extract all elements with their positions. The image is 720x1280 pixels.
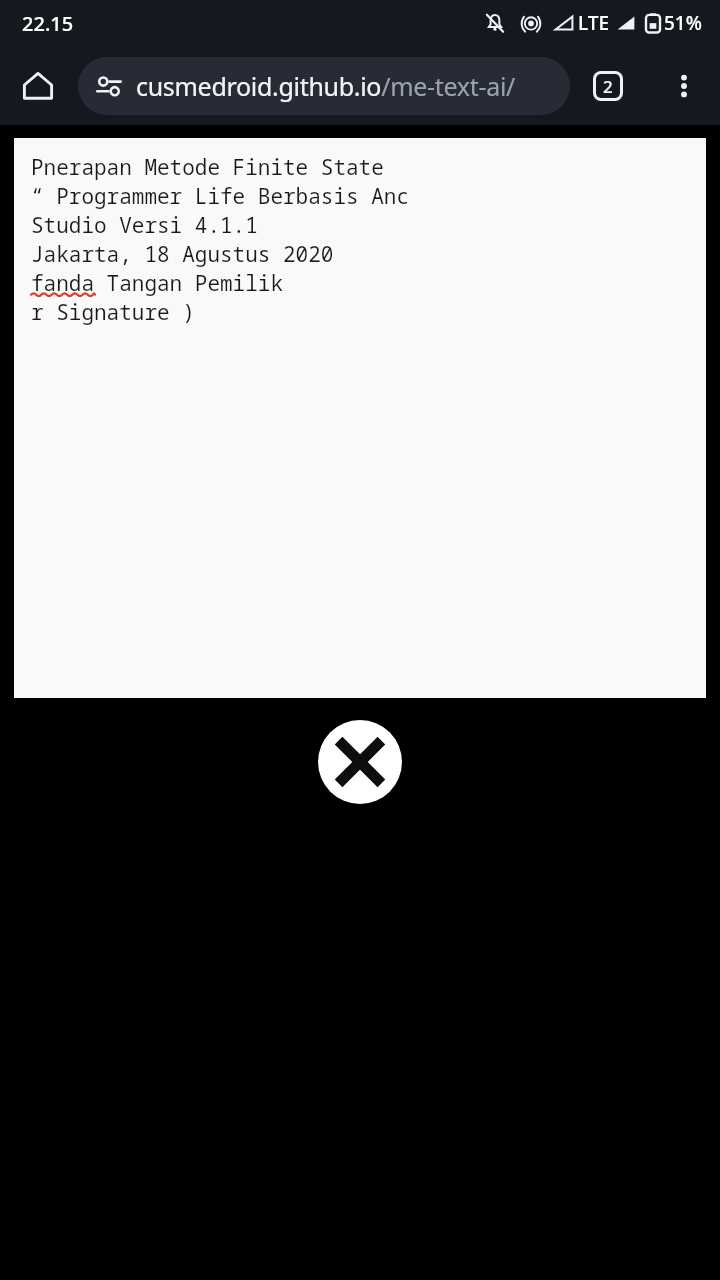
staticText: Studio Versi 4.1.1: [31, 211, 258, 240]
staticText: LTE: [578, 10, 610, 36]
staticText: cusmedroid.github.io/me-text-ai/came: [136, 69, 560, 103]
staticText: 2: [603, 75, 613, 98]
button[interactable]: Close: [318, 720, 402, 804]
button[interactable]: Tabs, 2 open: [580, 58, 636, 114]
staticText: 51%: [664, 10, 702, 36]
staticText: Jakarta, 18 Agustus 2020: [31, 240, 334, 269]
staticText: fanda Tangan Pemilik: [31, 269, 283, 298]
staticText: 22.15: [22, 10, 74, 37]
staticText: Pnerapan Metode Finite State: [31, 153, 384, 182]
staticText: “ Programmer Life Berbasis Anc: [31, 182, 409, 211]
staticText: r Signature ): [31, 298, 195, 327]
button[interactable]: cusmedroid.github.io/me-text-ai/came: [78, 57, 570, 115]
button[interactable]: Home: [10, 58, 66, 114]
button[interactable]: More options: [656, 58, 712, 114]
